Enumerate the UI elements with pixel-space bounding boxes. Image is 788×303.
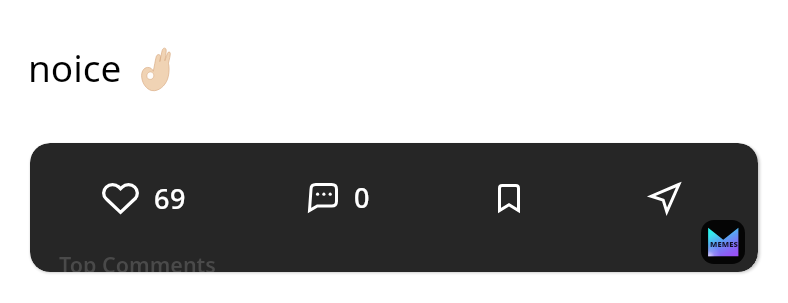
button[interactable]: 69 [94, 173, 195, 223]
staticText: Top Comments [59, 250, 216, 272]
button[interactable]: Save [484, 173, 534, 223]
staticText: noice [28, 42, 122, 92]
button[interactable]: Share [640, 173, 690, 223]
staticText: 69 [154, 180, 187, 217]
staticText: 0 [354, 179, 371, 216]
button[interactable]: Memes watermark [701, 220, 745, 264]
button[interactable]: 0 [300, 172, 379, 222]
staticText: MEMES [710, 239, 738, 249]
